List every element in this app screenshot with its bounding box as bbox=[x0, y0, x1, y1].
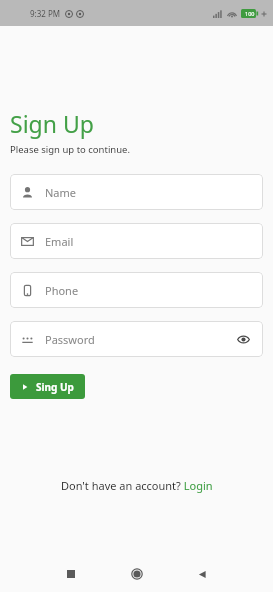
button[interactable]: Back bbox=[189, 561, 215, 587]
button[interactable]: Password bbox=[10, 321, 263, 357]
button[interactable]: Email bbox=[10, 223, 263, 259]
button[interactable]: Don't have an account? Login bbox=[61, 478, 213, 493]
button[interactable]: Sing Up bbox=[10, 374, 85, 399]
staticText: 100 bbox=[245, 10, 255, 17]
staticText: Email bbox=[45, 234, 74, 249]
button[interactable]: Home bbox=[124, 561, 150, 587]
staticText: Please sign up to continue. bbox=[10, 143, 130, 156]
staticText: Phone bbox=[45, 283, 79, 298]
button[interactable]: Toggle password visibility bbox=[234, 330, 252, 348]
staticText: Don't have an account? Login bbox=[61, 478, 213, 493]
button[interactable]: Name bbox=[10, 174, 263, 210]
staticText: Password bbox=[45, 332, 95, 347]
staticText: Name bbox=[45, 185, 77, 200]
button[interactable]: Recents bbox=[58, 561, 84, 587]
button[interactable]: Phone bbox=[10, 272, 263, 308]
staticText: Sign Up bbox=[10, 108, 94, 139]
staticText: 9:32 PM bbox=[30, 8, 61, 19]
staticText: Sing Up bbox=[36, 380, 74, 394]
